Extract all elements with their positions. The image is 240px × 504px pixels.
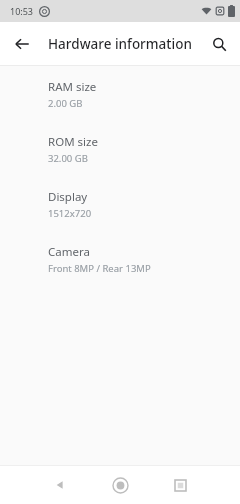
button[interactable]: Recent apps [164,469,196,501]
button[interactable]: Back [44,469,76,501]
staticText: 2.00 GB [48,97,83,110]
staticText: RAM size [48,79,97,95]
staticText: Display [48,189,88,205]
button[interactable]: Search [203,28,235,60]
staticText: 1512x720 [48,207,92,220]
button[interactable]: ROM size [0,128,240,183]
button[interactable]: Display [0,183,240,238]
staticText: 32.00 GB [48,152,88,165]
staticText: Camera [48,244,90,260]
staticText: Front 8MP / Rear 13MP [48,262,151,275]
button[interactable]: Home [104,469,136,501]
button[interactable]: Camera [0,238,240,293]
button[interactable]: Back [6,28,38,60]
staticText: 10:53 [10,5,34,17]
button[interactable]: RAM size [0,73,240,128]
staticText: Hardware information [48,35,192,53]
staticText: ROM size [48,134,98,150]
